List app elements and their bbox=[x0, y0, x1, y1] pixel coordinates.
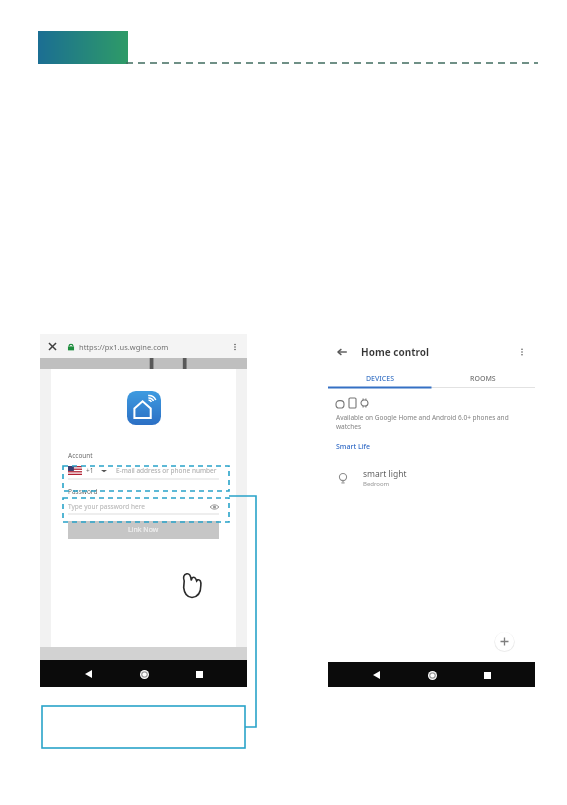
staticText: smart light bbox=[363, 468, 407, 480]
staticText: Available on Google Home and Android 6.0… bbox=[336, 413, 523, 431]
button[interactable]: smart light bbox=[328, 466, 535, 490]
button[interactable]: Type your password here bbox=[68, 499, 219, 514]
button[interactable]: More options bbox=[517, 347, 527, 357]
button[interactable]: Close bbox=[40, 334, 247, 358]
button[interactable]: Close bbox=[47, 341, 58, 352]
staticText: Bedroom bbox=[363, 480, 390, 488]
button[interactable]: Back bbox=[80, 666, 96, 682]
staticText: Password bbox=[68, 487, 98, 496]
button[interactable]: +1 bbox=[68, 462, 219, 479]
staticText: +1 bbox=[86, 466, 94, 475]
button[interactable]: Home bbox=[424, 667, 440, 683]
button[interactable]: ROOMS bbox=[431, 370, 535, 387]
button[interactable]: DEVICES bbox=[328, 370, 431, 387]
staticText: Home control bbox=[361, 345, 429, 359]
button[interactable]: Back bbox=[336, 346, 348, 358]
staticText: https://px1.us.wgine.com bbox=[79, 342, 169, 352]
staticText: Account bbox=[68, 451, 93, 460]
other: Smart Life app icon bbox=[127, 391, 161, 425]
button[interactable]: Add device bbox=[494, 631, 515, 652]
button[interactable]: Show password bbox=[210, 504, 219, 510]
staticText: ROOMS bbox=[470, 374, 496, 384]
button[interactable]: Smart Life bbox=[336, 442, 371, 452]
staticText: DEVICES bbox=[366, 374, 394, 384]
staticText: Type your password here bbox=[68, 502, 145, 511]
button[interactable]: Link Now bbox=[68, 521, 219, 539]
staticText: Link Now bbox=[128, 525, 159, 535]
button[interactable]: More options bbox=[230, 342, 240, 352]
button[interactable]: Back bbox=[368, 667, 384, 683]
button[interactable]: Home bbox=[136, 666, 152, 682]
staticText: E-mail address or phone number bbox=[116, 466, 217, 475]
button[interactable]: Recent apps bbox=[479, 667, 495, 683]
button[interactable]: Recent apps bbox=[191, 666, 207, 682]
button[interactable] bbox=[42, 706, 245, 748]
staticText: Smart Life bbox=[336, 442, 371, 452]
